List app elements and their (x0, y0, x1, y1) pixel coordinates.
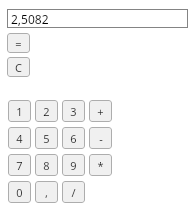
button[interactable]: 7 (8, 154, 31, 176)
button[interactable]: , (35, 181, 58, 203)
button[interactable]: 4 (8, 127, 31, 149)
button[interactable]: + (89, 100, 112, 122)
staticText: 9 (70, 158, 77, 173)
staticText: * (97, 158, 104, 173)
staticText: 2 (43, 104, 50, 119)
button[interactable]: C (7, 57, 30, 77)
staticText: 4 (16, 131, 23, 146)
button[interactable]: - (89, 127, 112, 149)
button[interactable]: = (7, 33, 30, 53)
button[interactable]: * (89, 154, 112, 176)
button[interactable]: 6 (62, 127, 85, 149)
staticText: + (97, 104, 104, 119)
staticText: 6 (70, 131, 77, 146)
staticText: 8 (43, 158, 50, 173)
button[interactable]: 0 (8, 181, 31, 203)
staticText: 7 (16, 158, 23, 173)
staticText: 1 (16, 104, 23, 119)
staticText: 2,5082 (11, 11, 49, 27)
button[interactable]: 8 (35, 154, 58, 176)
button[interactable]: 1 (8, 100, 31, 122)
staticText: 0 (16, 185, 23, 200)
button[interactable]: 9 (62, 154, 85, 176)
staticText: , (45, 185, 48, 200)
staticText: 3 (70, 104, 77, 119)
button[interactable]: / (62, 181, 85, 203)
button[interactable]: 2 (35, 100, 58, 122)
staticText: = (15, 36, 22, 51)
staticText: - (99, 131, 103, 146)
button[interactable]: 5 (35, 127, 58, 149)
button[interactable]: 3 (62, 100, 85, 122)
staticText: C (15, 60, 22, 75)
button[interactable]: 2,5082 (7, 9, 188, 28)
staticText: / (71, 185, 76, 200)
staticText: 5 (43, 131, 50, 146)
